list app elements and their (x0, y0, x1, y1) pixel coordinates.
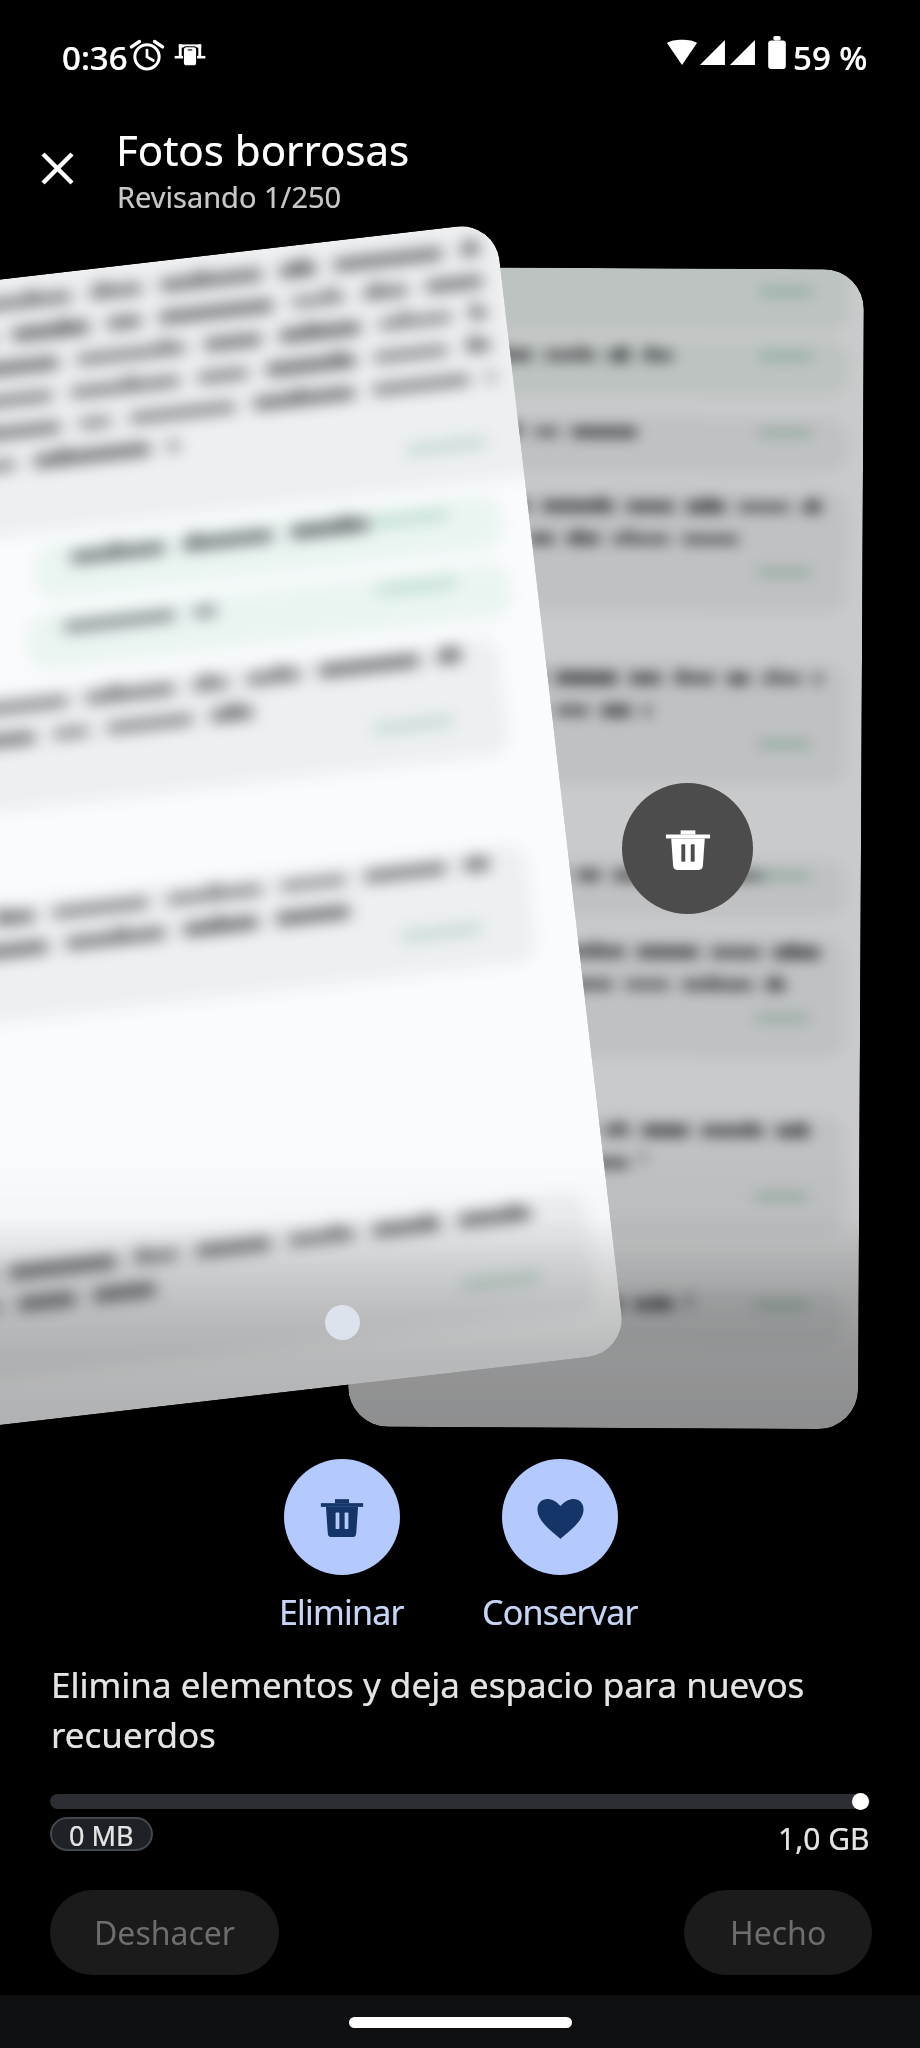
staticText: Revisando 1/250 (117, 177, 342, 216)
staticText: Fotos borrosas (116, 121, 410, 178)
button[interactable]: Cerrar (22, 133, 93, 204)
button[interactable]: Conservar (502, 1459, 618, 1575)
button[interactable]: Hecho (684, 1890, 872, 1975)
staticText: 59 % (793, 35, 868, 80)
button[interactable]: Eliminar esta foto (622, 783, 753, 914)
staticText: 1,0 GB (778, 1818, 870, 1859)
button[interactable]: Eliminar (284, 1459, 400, 1575)
button[interactable]: Deshacer (50, 1890, 279, 1975)
staticText: Hecho (730, 1911, 827, 1955)
staticText: Deshacer (94, 1911, 236, 1955)
staticText: Conservar (482, 1589, 638, 1635)
staticText: Eliminar (279, 1589, 404, 1635)
staticText: 0:36 (62, 35, 128, 80)
staticText: 0 MB (69, 1817, 134, 1851)
staticText: Elimina elementos y deja espacio para nu… (51, 1661, 811, 1758)
